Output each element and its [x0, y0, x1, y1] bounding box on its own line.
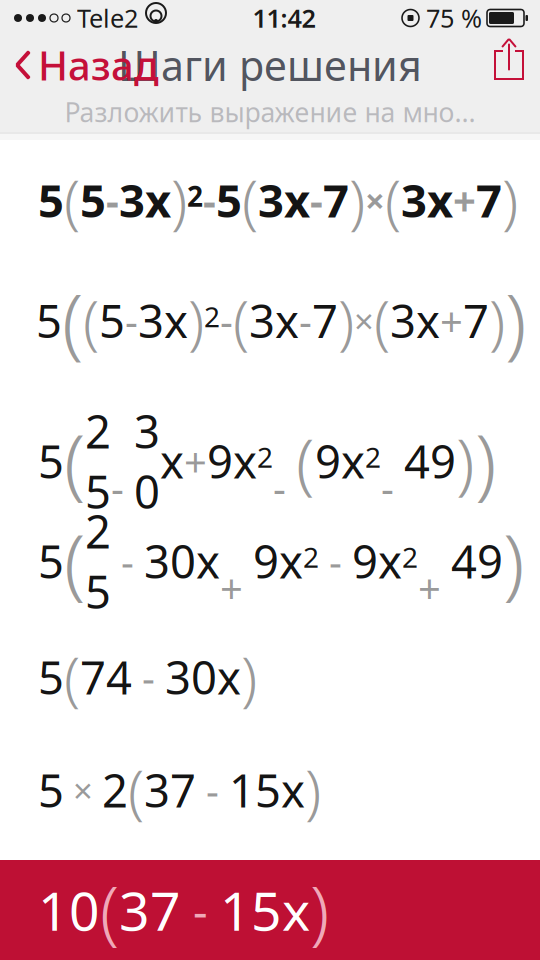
- staticText: 5: [38, 647, 64, 707]
- staticText: -: [125, 241, 138, 400]
- staticText: 5: [38, 431, 64, 491]
- staticText: 9: [253, 531, 279, 591]
- staticText: x: [282, 875, 310, 945]
- staticText: 7: [463, 290, 489, 351]
- staticText: (: [233, 281, 249, 359]
- staticText: +: [418, 508, 451, 614]
- button[interactable]: Назад: [0, 39, 169, 91]
- staticText: ): [349, 161, 365, 239]
- staticText: 5: [38, 531, 64, 591]
- staticText: 15: [229, 760, 281, 820]
- staticText: ): [502, 161, 518, 239]
- staticText: x: [341, 431, 365, 491]
- staticText: (: [385, 161, 401, 239]
- staticText: 30: [134, 401, 160, 521]
- staticText: Разложить выражение на мно...: [64, 94, 475, 130]
- staticText: ): [505, 269, 526, 372]
- staticText: ): [310, 864, 329, 956]
- staticText: 5: [38, 170, 64, 230]
- staticText: 5: [99, 290, 125, 351]
- staticText: -: [381, 408, 404, 514]
- staticText: (: [62, 269, 83, 372]
- staticText: 2: [102, 760, 128, 820]
- staticText: ): [503, 510, 524, 612]
- staticText: ×: [354, 251, 374, 389]
- staticText: 11:42: [252, 1, 315, 35]
- staticText: -: [132, 650, 165, 703]
- staticText: 2: [303, 538, 319, 576]
- staticText: x: [233, 431, 257, 491]
- staticText: -: [203, 120, 216, 280]
- staticText: (: [100, 864, 119, 956]
- staticText: (: [64, 510, 85, 612]
- staticText: 7: [476, 170, 502, 230]
- staticText: ×: [64, 767, 102, 813]
- staticText: ): [241, 638, 257, 716]
- staticText: Tele2: [77, 1, 138, 35]
- staticText: 2: [257, 438, 273, 476]
- staticText: 2: [204, 298, 220, 335]
- staticText: ): [305, 751, 321, 829]
- staticText: 5: [216, 170, 242, 230]
- staticText: Шаги решения: [118, 38, 422, 92]
- staticText: 5: [36, 290, 62, 351]
- staticText: x: [378, 531, 402, 591]
- staticText: -: [111, 534, 144, 587]
- staticText: (: [374, 281, 390, 359]
- staticText: 10: [38, 875, 100, 945]
- staticText: 9: [207, 431, 233, 491]
- staticText: (: [64, 410, 85, 512]
- staticText: x: [427, 170, 453, 230]
- staticText: 25: [85, 401, 111, 521]
- staticText: x: [160, 431, 184, 491]
- staticText: (: [83, 281, 99, 359]
- staticText: -: [181, 880, 220, 940]
- staticText: (: [64, 161, 80, 239]
- staticText: ): [475, 410, 496, 512]
- staticText: x: [196, 531, 220, 591]
- staticText: +: [220, 508, 253, 614]
- staticText: ): [338, 281, 354, 359]
- staticText: +: [184, 381, 207, 541]
- staticText: -: [319, 534, 352, 587]
- staticText: x: [275, 290, 299, 351]
- staticText: 3: [258, 170, 284, 230]
- staticText: 75 %: [426, 1, 482, 35]
- staticText: 3: [119, 170, 145, 230]
- staticText: ): [188, 281, 204, 359]
- staticText: 25: [85, 501, 111, 621]
- staticText: x: [217, 647, 241, 707]
- staticText: 7: [312, 290, 338, 351]
- staticText: -: [273, 408, 296, 514]
- staticText: (: [64, 638, 80, 716]
- staticText: (: [296, 417, 315, 505]
- staticText: 5: [38, 760, 64, 820]
- staticText: 2: [187, 177, 203, 215]
- staticText: 3: [401, 170, 427, 230]
- staticText: x: [284, 170, 310, 230]
- button[interactable]: Share: [478, 39, 540, 91]
- staticText: -: [111, 408, 134, 514]
- button[interactable]: 10: [0, 860, 540, 960]
- staticText: 3: [249, 290, 275, 351]
- staticText: -: [299, 241, 312, 400]
- staticText: 3: [138, 290, 164, 351]
- staticText: 30: [144, 531, 196, 591]
- staticText: ): [171, 161, 187, 239]
- staticText: 37: [144, 760, 196, 820]
- staticText: x: [164, 290, 188, 351]
- staticText: -: [196, 763, 229, 816]
- staticText: 7: [323, 170, 349, 230]
- staticText: ): [456, 417, 475, 505]
- staticText: +: [440, 241, 463, 400]
- staticText: x: [279, 531, 303, 591]
- staticText: 2: [402, 538, 418, 576]
- staticText: 74: [80, 647, 132, 707]
- staticText: ): [489, 281, 505, 359]
- staticText: x: [145, 170, 171, 230]
- staticText: 9: [352, 531, 378, 591]
- staticText: (: [128, 751, 144, 829]
- staticText: 15: [220, 875, 282, 945]
- staticText: 37: [119, 875, 181, 945]
- staticText: 5: [80, 170, 106, 230]
